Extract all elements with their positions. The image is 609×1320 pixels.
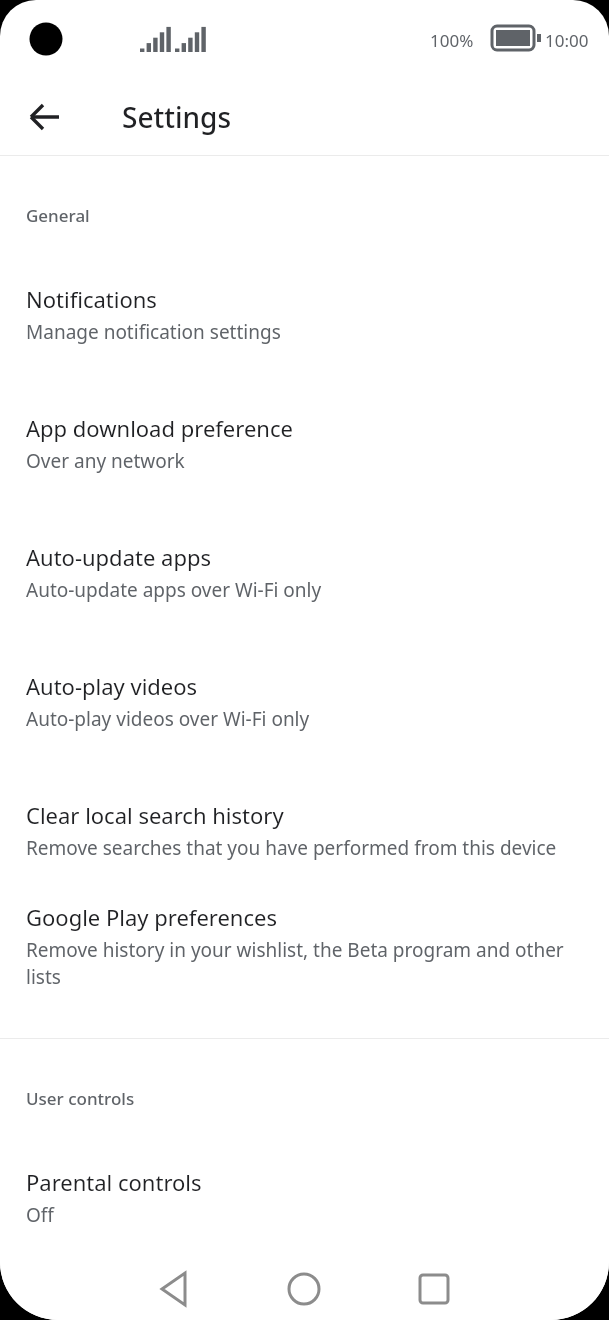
staticText: Manage notification settings	[26, 319, 281, 345]
staticText: Over any network	[26, 448, 185, 474]
button[interactable]: Auto-update apps	[0, 542, 609, 603]
button[interactable]: Recent apps	[404, 1259, 464, 1319]
button[interactable]: Back	[21, 93, 69, 141]
staticText: Auto-play videos over Wi-Fi only	[26, 706, 310, 732]
staticText: Auto-update apps	[26, 542, 211, 572]
staticText: Parental controls	[26, 1167, 202, 1197]
staticText: App download preference	[26, 413, 293, 443]
staticText: Notifications	[26, 284, 157, 314]
button[interactable]: App download preference	[0, 413, 609, 474]
button[interactable]: Home	[274, 1259, 334, 1319]
staticText: Google Play preferences	[26, 902, 277, 932]
staticText: General	[26, 204, 90, 227]
staticText: 100%	[430, 29, 474, 52]
staticText: Remove searches that you have performed …	[26, 835, 557, 861]
staticText: 10:00	[545, 29, 589, 52]
button[interactable]: Parental controls	[0, 1167, 609, 1228]
staticText: User controls	[26, 1087, 135, 1110]
staticText: Remove history in your wishlist, the Bet…	[26, 937, 577, 990]
staticText: Off	[26, 1202, 54, 1228]
button[interactable]: Clear local search history	[0, 800, 609, 861]
staticText: Auto-play videos	[26, 671, 198, 701]
staticText: Settings	[122, 98, 232, 136]
button[interactable]: Auto-play videos	[0, 671, 609, 732]
button[interactable]: Google Play preferences	[0, 902, 609, 990]
button[interactable]: Notifications	[0, 284, 609, 345]
button[interactable]: Back	[145, 1259, 205, 1319]
staticText: Clear local search history	[26, 800, 284, 830]
staticText: Auto-update apps over Wi-Fi only	[26, 577, 322, 603]
